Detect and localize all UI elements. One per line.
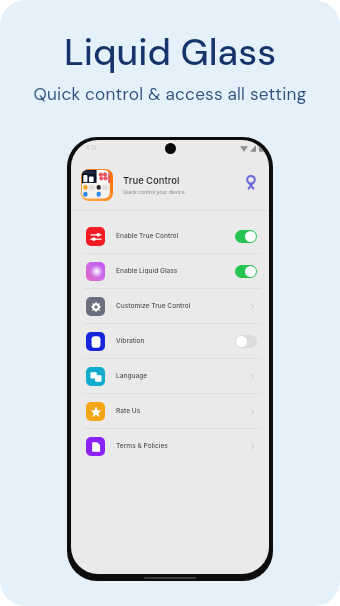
staticText: 4:18 bbox=[86, 145, 97, 152]
button[interactable]: Vibration bbox=[71, 324, 269, 358]
staticText: Terms & Policies bbox=[116, 442, 248, 450]
button[interactable]: Enable Liquid Glass bbox=[71, 254, 269, 288]
staticText: Enable True Control bbox=[116, 232, 235, 240]
button[interactable]: Customize True Control bbox=[71, 289, 269, 323]
button[interactable]: Switch on bbox=[235, 230, 257, 243]
button[interactable]: Enable True Control bbox=[71, 219, 269, 253]
button[interactable]: True Control bbox=[71, 159, 269, 210]
button[interactable]: Switch off bbox=[235, 335, 257, 348]
button[interactable]: Rate Us bbox=[71, 394, 269, 428]
staticText: Customize True Control bbox=[116, 302, 248, 310]
button[interactable]: Language bbox=[71, 359, 269, 393]
staticText: Liquid Glass bbox=[0, 28, 340, 76]
staticText: Enable Liquid Glass bbox=[116, 267, 235, 275]
button[interactable]: Switch on bbox=[235, 265, 257, 278]
button[interactable]: Premium bbox=[243, 172, 259, 190]
staticText: True Control bbox=[123, 175, 180, 186]
button[interactable]: Terms & Policies bbox=[71, 429, 269, 463]
staticText: Vibration bbox=[116, 337, 235, 345]
staticText: Rate Us bbox=[116, 407, 248, 415]
staticText: Quick control & access all setting bbox=[0, 83, 340, 105]
staticText: Quick control your device bbox=[123, 189, 185, 195]
staticText: Language bbox=[116, 372, 248, 380]
